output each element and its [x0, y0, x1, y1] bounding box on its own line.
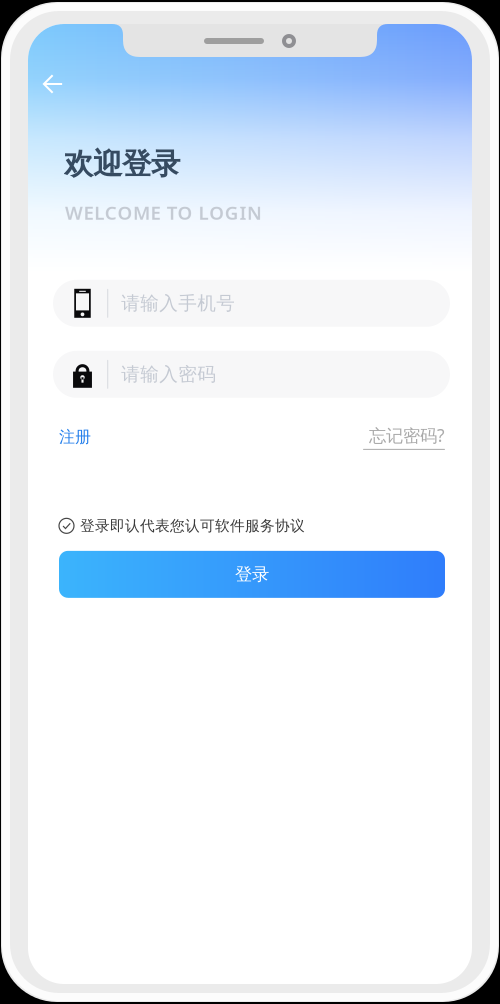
button[interactable]: 忘记密码? [363, 422, 445, 452]
staticText: WELCOME TO LOGIN [65, 200, 262, 225]
button[interactable]: Back [31, 62, 75, 106]
button[interactable]: 请输入手机号 [53, 280, 450, 327]
staticText: 注册 [59, 427, 91, 447]
staticText: 忘记密码? [369, 424, 445, 447]
button[interactable]: 请输入密码 [53, 351, 450, 398]
button[interactable]: 注册 [59, 423, 97, 451]
staticText: 请输入密码 [121, 363, 216, 386]
staticText: 欢迎登录 [64, 146, 180, 182]
button[interactable]: 登录 [59, 551, 445, 598]
staticText: 请输入手机号 [121, 292, 235, 315]
staticText: 登录 [235, 564, 269, 585]
button[interactable]: 登录即认代表您认可软件服务协议 [59, 516, 445, 536]
staticText: 登录即认代表您认可软件服务协议 [80, 517, 305, 535]
